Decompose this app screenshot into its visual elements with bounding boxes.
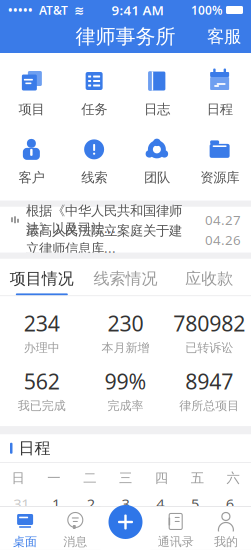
button[interactable]: 4 xyxy=(143,493,178,514)
staticText: 二 xyxy=(83,470,96,486)
staticText: 4 xyxy=(156,494,164,514)
staticText: 11 xyxy=(152,520,168,540)
button[interactable]: 团队 xyxy=(125,131,188,191)
button[interactable]: 任务 xyxy=(63,63,126,122)
staticText: 780982 xyxy=(173,309,245,337)
button[interactable]: 9 xyxy=(73,519,108,540)
staticText: 3 xyxy=(121,494,129,514)
staticText: 桌面 xyxy=(13,534,37,549)
staticText: 100% xyxy=(191,2,223,18)
button[interactable]: 12 xyxy=(178,519,212,540)
staticText: 团队 xyxy=(144,169,170,186)
button[interactable]: 230 xyxy=(84,309,167,355)
staticText: 线索情况 xyxy=(93,269,157,288)
staticText: ••••• AT&T ≋ xyxy=(8,2,84,18)
staticText: 办理中 xyxy=(24,340,60,355)
button[interactable]: 6 xyxy=(212,493,247,514)
staticText: 资源库 xyxy=(200,169,239,186)
button[interactable]: 234 xyxy=(0,309,84,355)
staticText: 04.27 xyxy=(205,211,241,229)
staticText: 14 xyxy=(13,546,29,550)
staticText: 日志 xyxy=(144,101,170,117)
staticText: 13 xyxy=(222,520,238,540)
button[interactable]: 应收款 xyxy=(167,259,251,295)
button[interactable]: 31 xyxy=(4,493,39,514)
button[interactable]: 客服 xyxy=(197,20,251,53)
staticText: 04.26 xyxy=(205,231,241,249)
staticText: 日 xyxy=(11,470,24,486)
staticText: 1 xyxy=(52,494,60,514)
staticText: 四 xyxy=(155,470,168,486)
staticText: 99% xyxy=(104,367,146,395)
staticText: 五 xyxy=(191,470,204,486)
staticText: 应收款 xyxy=(185,269,233,288)
staticText: 10 xyxy=(117,520,133,540)
button[interactable]: 10 xyxy=(108,519,143,540)
staticText: 根据《中华人民共和国律师法》以及司法... xyxy=(26,203,182,237)
button[interactable]: 14 xyxy=(4,545,39,550)
button[interactable]: 2 xyxy=(73,493,108,514)
button[interactable]: 20 xyxy=(212,545,247,550)
staticText: 消息 xyxy=(63,534,87,549)
button[interactable]: 线索情况 xyxy=(84,259,167,295)
button[interactable]: 5 xyxy=(178,493,212,514)
staticText: 律所总项目 xyxy=(179,398,239,413)
button[interactable]: 7 xyxy=(4,519,39,540)
staticText: 通讯录 xyxy=(158,534,194,549)
button[interactable]: 通讯录 xyxy=(151,507,201,549)
button[interactable]: 8 xyxy=(39,519,73,540)
staticText: 234 xyxy=(24,309,60,337)
button[interactable]: 1 xyxy=(39,493,73,514)
staticText: 230 xyxy=(107,309,143,337)
button[interactable]: 线索 xyxy=(63,131,126,191)
button[interactable]: 16 xyxy=(73,545,108,550)
staticText: 18 xyxy=(152,546,168,550)
button[interactable]: 桌面 xyxy=(0,507,50,549)
button[interactable]: 客户 xyxy=(0,131,63,191)
button[interactable]: 最高人民法院立案庭关于建立律师信息库... xyxy=(0,230,251,250)
staticText: 20 xyxy=(222,546,238,550)
staticText: 8947 xyxy=(185,367,233,395)
staticText: 项目 xyxy=(18,101,44,117)
staticText: 已转诉讼 xyxy=(185,340,233,355)
button[interactable]: 项目 xyxy=(0,63,63,122)
button[interactable]: 11 xyxy=(143,519,178,540)
button[interactable]: 日程 xyxy=(188,63,251,122)
button[interactable]: 我的 xyxy=(201,507,251,549)
button[interactable]: 新建 xyxy=(108,505,142,539)
staticText: 本月新增 xyxy=(101,340,149,355)
button[interactable]: 3 xyxy=(108,493,143,514)
staticText: 2 xyxy=(87,494,95,514)
staticText: 我的 xyxy=(214,534,238,549)
staticText: 线索 xyxy=(81,169,107,186)
staticText: 一 xyxy=(47,470,60,486)
button[interactable]: 项目情况 xyxy=(0,259,84,295)
button[interactable]: 15 xyxy=(39,545,73,550)
staticText: 最高人民法院立案庭关于建立律师信息库... xyxy=(26,223,182,257)
button[interactable]: 8947 xyxy=(167,367,251,413)
button[interactable]: 消息 xyxy=(50,507,100,549)
staticText: 三 xyxy=(119,470,132,486)
staticText: 六 xyxy=(227,470,240,486)
staticText: 16 xyxy=(83,546,99,550)
staticText: 7 xyxy=(17,520,25,540)
button[interactable]: 根据《中华人民共和国律师法》以及司法... xyxy=(0,210,251,230)
button[interactable]: 日志 xyxy=(125,63,188,122)
button[interactable]: 资源库 xyxy=(188,131,251,191)
button[interactable]: 99% xyxy=(84,367,167,413)
button[interactable]: 13 xyxy=(212,519,247,540)
staticText: 律师事务所 xyxy=(75,24,175,49)
staticText: 19 xyxy=(187,546,203,550)
button[interactable]: 562 xyxy=(0,367,84,413)
staticText: 任务 xyxy=(81,101,107,117)
staticText: 项目情况 xyxy=(10,269,74,288)
button[interactable]: 18 xyxy=(143,545,178,550)
staticText: 客服 xyxy=(207,26,241,47)
button[interactable]: 19 xyxy=(178,545,212,550)
button[interactable]: 780982 xyxy=(167,309,251,355)
